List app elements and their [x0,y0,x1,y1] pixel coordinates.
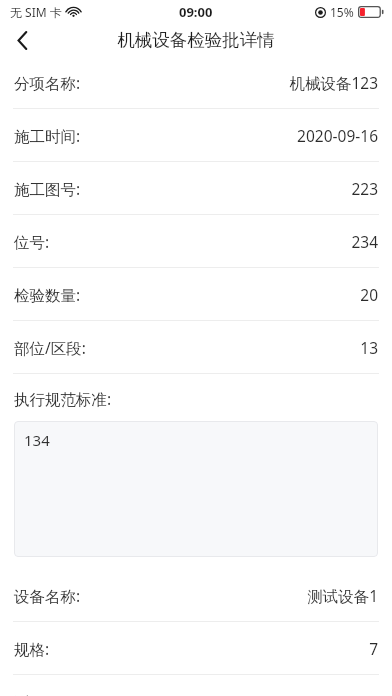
staticText: 无 SIM 卡 [10,4,62,20]
staticText: 施工时间: [14,125,81,146]
staticText: 施工图号: [14,178,81,199]
staticText: 223 [351,178,378,199]
staticText: 分项名称: [14,72,81,93]
staticText: 机械设备检验批详情 [117,29,275,51]
staticText: 执行规范标准: [14,388,112,409]
button[interactable]: 施工图号: [0,162,392,214]
staticText: 13 [360,337,378,358]
staticText: 7 [369,638,378,659]
button[interactable]: 设备名称: [0,569,392,621]
button[interactable]: 134 [14,421,378,557]
staticText: 规格: [14,638,50,659]
staticText: 部位/区段: [14,337,86,358]
staticText: 位号: [14,231,50,252]
button[interactable]: 部位/区段: [0,321,392,373]
staticText: 20 [360,284,378,305]
staticText: 09:00 [179,3,213,21]
staticText: 234 [351,231,378,252]
staticText: 15% [330,4,354,20]
button[interactable]: 分项名称: [0,56,392,108]
staticText: 测试设备1 [307,585,378,606]
button[interactable]: 位号: [0,215,392,267]
staticText: 设备名称: [14,585,81,606]
staticText: 检验数量: [14,284,81,305]
staticText: 型号: [14,691,50,696]
staticText: 机械设备123 [289,72,378,93]
button[interactable]: 检验数量: [0,268,392,320]
button[interactable]: Back [0,24,44,56]
button[interactable]: 规格: [0,622,392,674]
button[interactable]: 施工时间: [0,109,392,161]
staticText: 2020-09-16 [297,125,378,146]
staticText: 134 [24,430,50,450]
